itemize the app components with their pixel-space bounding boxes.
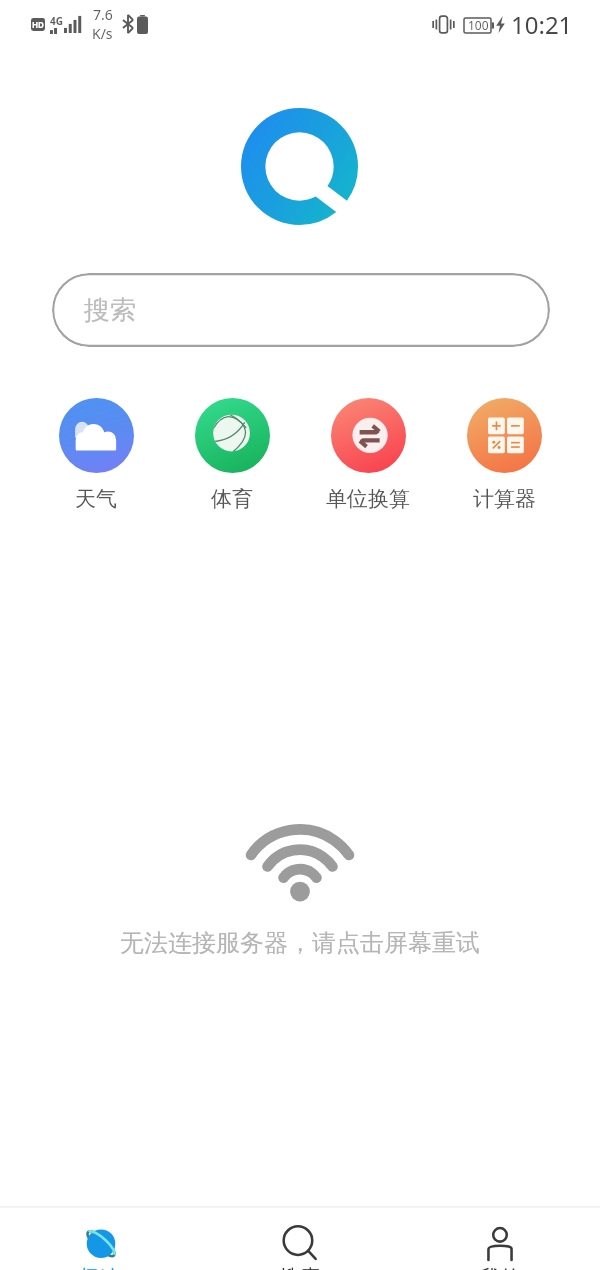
- staticText: 计算器: [473, 486, 536, 512]
- staticText: 7.6: [93, 5, 113, 24]
- staticText: 无法连接服务器，请点击屏幕重试: [120, 928, 480, 958]
- staticText: 4G: [50, 14, 63, 28]
- staticText: 10:21: [511, 8, 573, 41]
- other: Profile: [483, 1226, 517, 1260]
- button[interactable]: 单位换算: [300, 398, 436, 512]
- staticText: HD: [32, 19, 44, 30]
- staticText: 搜索: [84, 294, 136, 327]
- staticText: K/s: [92, 24, 113, 43]
- button[interactable]: 天气: [28, 398, 164, 512]
- button[interactable]: 体育: [164, 398, 300, 512]
- button[interactable]: Search: [200, 1208, 400, 1270]
- button[interactable]: 无法连接服务器，请点击屏幕重试: [0, 814, 600, 958]
- button[interactable]: 计算器: [436, 398, 572, 512]
- staticText: 极速: [79, 1265, 121, 1270]
- staticText: 100: [468, 17, 489, 33]
- staticText: 体育: [211, 486, 253, 512]
- staticText: 单位换算: [326, 486, 410, 512]
- button[interactable]: Browser: [0, 1208, 200, 1270]
- staticText: 天气: [75, 486, 117, 512]
- button[interactable]: 搜索: [52, 273, 550, 347]
- staticText: 搜索: [279, 1265, 321, 1270]
- other: Search: [283, 1226, 317, 1260]
- button[interactable]: Profile: [400, 1208, 600, 1270]
- staticText: 我的: [479, 1265, 521, 1270]
- other: Browser: [83, 1226, 117, 1260]
